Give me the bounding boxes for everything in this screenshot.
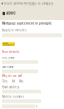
staticText: v <box>36 104 37 108</box>
button[interactable] <box>2 69 38 73</box>
button[interactable]: Mrs <box>19 80 23 83</box>
button[interactable]: Mr <box>12 80 15 83</box>
button[interactable] <box>2 60 38 64</box>
button[interactable]: Why do we ask? <box>2 74 22 78</box>
staticText: Mortgage agreement in principle <box>2 22 52 25</box>
staticText: Mobile number <box>2 95 24 98</box>
staticText: Why do we ask? <box>2 74 22 78</box>
button[interactable]: CHECK ELIGIBILITY <box>2 42 15 46</box>
staticText: Mrs <box>19 80 23 83</box>
staticText: Mr <box>12 80 15 83</box>
staticText: Email address <box>2 85 19 89</box>
staticText: ADMO <box>6 12 15 15</box>
staticText: First name <box>2 56 15 59</box>
staticText: Title <box>2 80 8 83</box>
staticText: Last name <box>2 65 14 69</box>
staticText: CHECK ELIGIBILITY <box>3 42 14 46</box>
staticText: Your details <box>2 50 19 54</box>
staticText: Apply in minutes <box>2 28 26 32</box>
button[interactable] <box>2 99 41 103</box>
staticText: secure.admiral-mortgage.co.uk/apply <box>4 2 53 5</box>
